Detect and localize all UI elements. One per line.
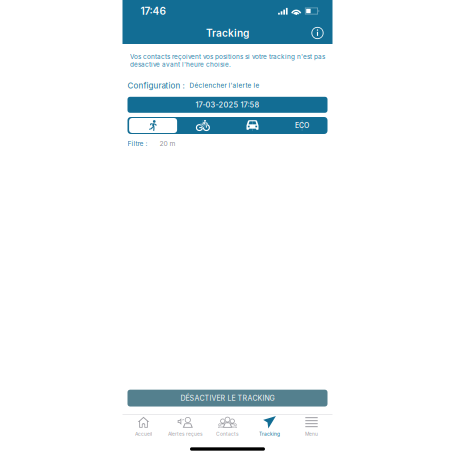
staticText: 20 m (159, 140, 175, 148)
button[interactable]: 17-03-2025 17:58 (127, 97, 327, 113)
staticText: Tracking (259, 431, 280, 437)
button[interactable]: Menu (290, 414, 332, 443)
staticText: 17:46 (140, 5, 165, 17)
staticText: DÉSACTIVER LE TRACKING (180, 394, 274, 402)
staticText: Filtre : (127, 140, 147, 148)
staticText: Contacts (216, 431, 239, 437)
staticText: Vos contacts reçoivent vos positions si … (130, 53, 325, 68)
button[interactable]: Voiture (228, 117, 277, 134)
staticText: Déclencher l'alerte le (189, 82, 259, 89)
button[interactable]: Alertes reçues (164, 414, 206, 443)
staticText: Tracking (206, 27, 249, 39)
button[interactable]: Informations (306, 23, 328, 43)
button[interactable]: ECO (277, 117, 327, 134)
button[interactable]: Contacts (206, 414, 248, 443)
button[interactable]: Tracking (248, 414, 290, 443)
staticText: Menu (305, 431, 318, 437)
staticText: ECO (295, 121, 309, 130)
staticText: Accueil (135, 431, 152, 437)
staticText: 17-03-2025 17:58 (195, 100, 259, 109)
button[interactable]: Accueil (122, 414, 164, 443)
button[interactable]: Vélo (178, 117, 228, 134)
button[interactable]: DÉSACTIVER LE TRACKING (127, 390, 327, 406)
staticText: Alertes reçues (168, 431, 203, 437)
button[interactable]: Marche (128, 117, 178, 134)
staticText: Configuration : (127, 81, 184, 90)
